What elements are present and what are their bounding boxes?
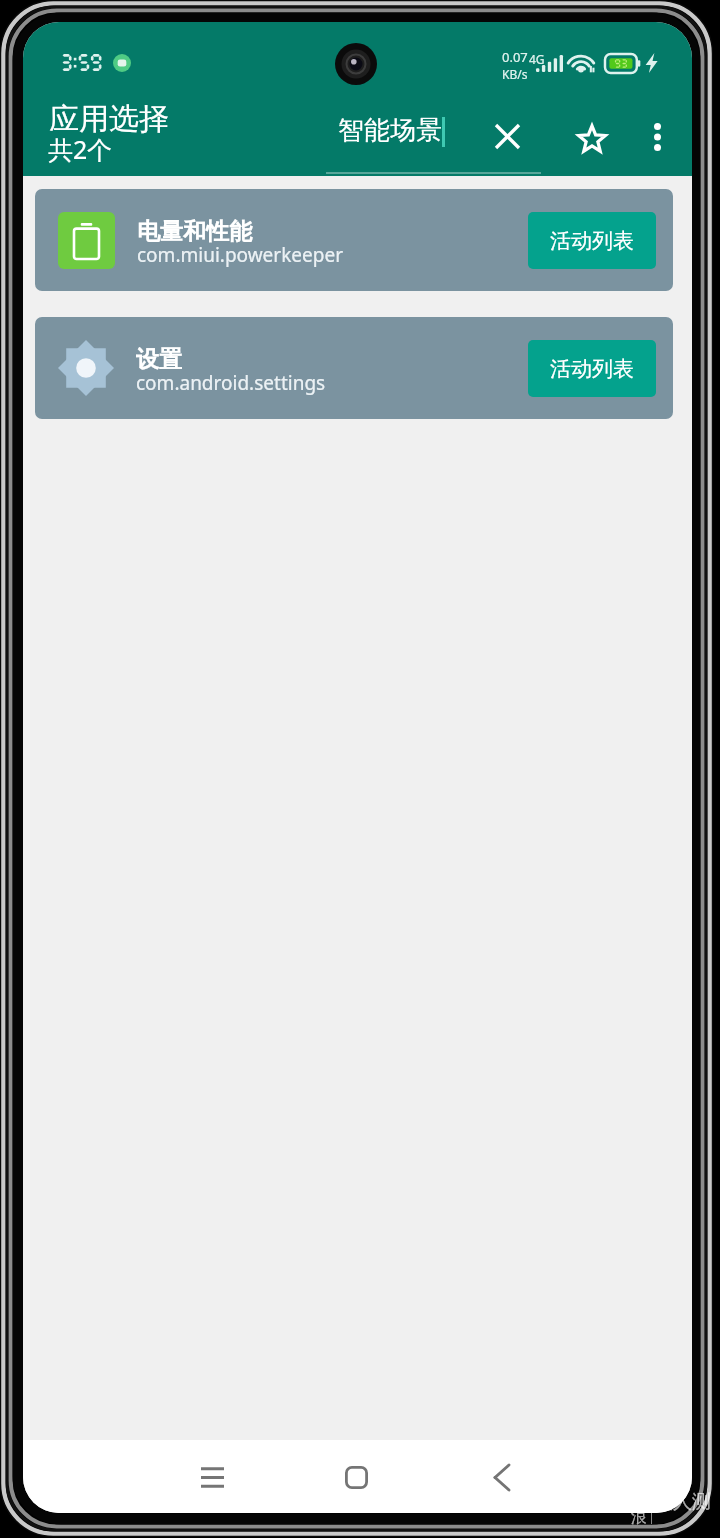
button[interactable]: Close xyxy=(479,108,535,164)
button[interactable]: Favorite xyxy=(564,111,620,167)
staticText: 智能场景 xyxy=(338,114,442,147)
staticText: 浪 xyxy=(631,1507,647,1527)
button[interactable]: 活动列表 xyxy=(528,340,656,397)
staticText: com.android.settings xyxy=(136,370,326,396)
staticText: 活动列表 xyxy=(550,228,634,254)
button[interactable]: Back xyxy=(478,1453,526,1501)
button[interactable]: 活动列表 xyxy=(528,212,656,269)
staticText: 活动列表 xyxy=(550,356,634,382)
staticText: 应用选择 xyxy=(49,100,169,138)
button[interactable]: More options xyxy=(629,109,685,165)
staticText: 人人测 xyxy=(654,1490,711,1514)
staticText: 设置 xyxy=(136,345,182,374)
staticText: 电量和性能 xyxy=(137,217,252,246)
staticText: com.miui.powerkeeper xyxy=(137,242,343,268)
button[interactable]: 设置 xyxy=(35,317,673,419)
staticText: 共2个 xyxy=(48,132,113,166)
button[interactable]: Home xyxy=(332,1453,380,1501)
button[interactable]: 电量和性能 xyxy=(35,189,673,291)
staticText: KB/s xyxy=(502,66,528,82)
button[interactable]: Recents xyxy=(188,1453,236,1501)
staticText: 4G xyxy=(529,51,545,67)
staticText: 0.07 xyxy=(502,48,528,66)
